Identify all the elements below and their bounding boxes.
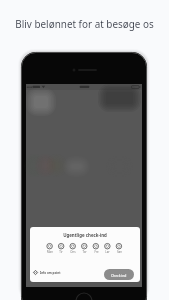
staticText: Info om point: [40, 271, 61, 275]
staticText: Lør: [105, 250, 110, 254]
staticText: Bliv belønnet for at besøge os: [0, 17, 169, 30]
staticText: Tor: [82, 250, 87, 254]
staticText: Fre: [94, 250, 99, 254]
button[interactable]: Check ind: [104, 269, 134, 280]
button[interactable]: [30, 227, 140, 282]
staticText: Check ind: [111, 273, 127, 277]
staticText: Søn: [117, 250, 122, 254]
staticText: Ugentlige check-ind: [30, 232, 140, 238]
button[interactable]: Info om point: [33, 267, 61, 278]
staticText: Ons: [70, 250, 76, 254]
staticText: Man: [47, 250, 53, 254]
staticText: Tir: [59, 250, 63, 254]
